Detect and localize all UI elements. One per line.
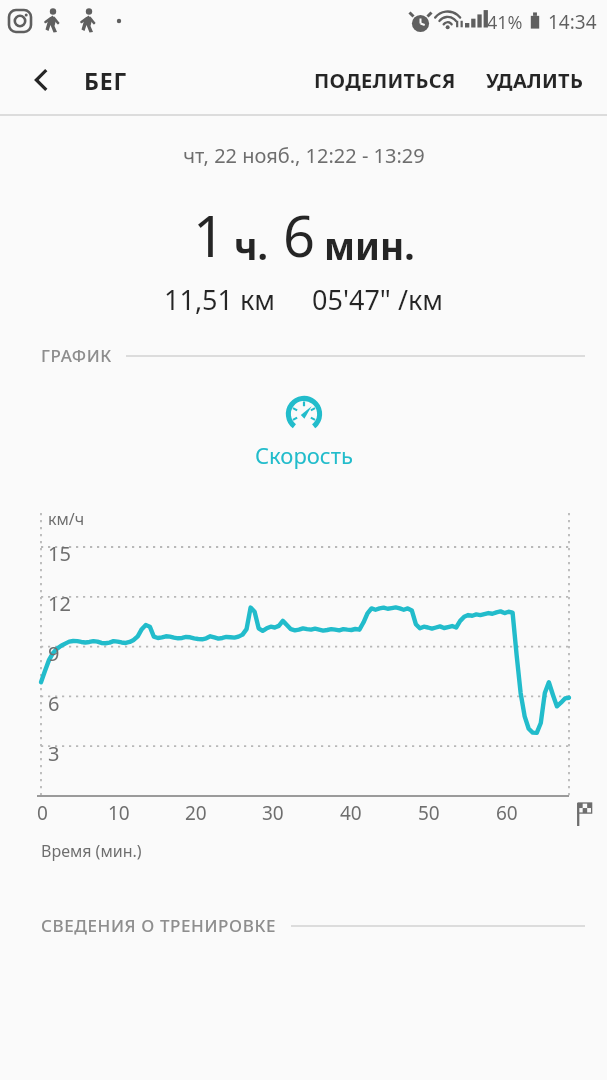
staticText: 6 (283, 197, 316, 273)
staticText: 1 (193, 197, 226, 273)
staticText: Время (мин.) (41, 840, 142, 862)
staticText: 11,51 км (164, 281, 276, 318)
staticText: км/ч (48, 508, 85, 530)
staticText: 14:34 (548, 9, 597, 35)
staticText: 0 (37, 800, 48, 826)
staticText: ГРАФИК (41, 344, 112, 367)
staticText: 3 (48, 740, 60, 767)
staticText: СВЕДЕНИЯ О ТРЕНИРОВКЕ (41, 914, 277, 937)
staticText: чт, 22 нояб., 12:22 - 13:29 (183, 142, 425, 169)
staticText: 12 (48, 590, 71, 617)
staticText: 50 (418, 800, 440, 826)
staticText: мин. (324, 220, 415, 270)
staticText: 20 (185, 800, 207, 826)
button[interactable]: БЕГ (80, 57, 132, 104)
staticText: Скорость (255, 440, 353, 470)
staticText: 41% (487, 10, 523, 35)
staticText: 40 (340, 800, 362, 826)
staticText: ч. (234, 220, 268, 270)
staticText: ПОДЕЛИТЬСЯ (314, 67, 456, 94)
staticText: УДАЛИТЬ (486, 67, 584, 94)
button[interactable]: УДАЛИТЬ (481, 58, 589, 103)
button[interactable]: Скорость (239, 387, 369, 474)
staticText: 15 (48, 540, 71, 567)
staticText: 6 (48, 690, 60, 717)
staticText: БЕГ (84, 65, 128, 96)
staticText: 05'47" /км (312, 281, 444, 318)
button[interactable]: ПОДЕЛИТЬСЯ (309, 58, 461, 103)
staticText: 9 (48, 640, 60, 667)
staticText: 30 (262, 800, 284, 826)
staticText: 60 (496, 800, 518, 826)
staticText: 10 (108, 800, 130, 826)
button[interactable]: Назад (14, 53, 68, 107)
